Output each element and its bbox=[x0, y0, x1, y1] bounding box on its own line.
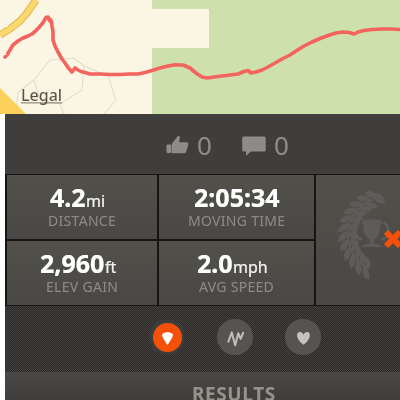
staticText: 0 bbox=[274, 127, 289, 162]
staticText: RESULTS bbox=[192, 381, 276, 400]
button[interactable]: RESULTS bbox=[5, 372, 400, 400]
staticText: mph bbox=[233, 256, 268, 278]
button[interactable]: Map bbox=[149, 319, 185, 355]
button[interactable]: 2:05:34 bbox=[159, 175, 314, 239]
button[interactable]: 0 bbox=[160, 119, 218, 170]
button[interactable]: 0 bbox=[236, 119, 295, 170]
staticText: ft bbox=[105, 256, 117, 278]
button[interactable]: Heart rate bbox=[285, 319, 321, 355]
staticText: DISTANCE bbox=[48, 211, 117, 230]
staticText: 2.0 bbox=[197, 246, 233, 280]
button[interactable]: Achievements bbox=[316, 175, 400, 305]
staticText: mi bbox=[86, 190, 106, 212]
button[interactable]: Legal bbox=[21, 84, 63, 106]
staticText: 2:05:34 bbox=[194, 180, 280, 214]
button[interactable]: 4.2 bbox=[7, 175, 157, 239]
staticText: 2,960 bbox=[40, 246, 105, 280]
staticText: AVG SPEED bbox=[199, 277, 275, 296]
staticText: 0 bbox=[197, 127, 212, 162]
button[interactable]: 2.0 bbox=[159, 241, 314, 305]
staticText: Legal bbox=[21, 84, 63, 106]
button[interactable]: Analysis bbox=[217, 319, 253, 355]
button[interactable]: 2,960 bbox=[7, 241, 157, 305]
staticText: ELEV GAIN bbox=[46, 277, 119, 296]
staticText: MOVING TIME bbox=[188, 211, 286, 230]
staticText: 4.2 bbox=[50, 180, 86, 214]
